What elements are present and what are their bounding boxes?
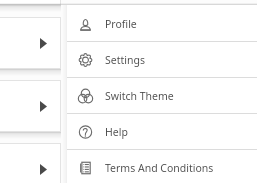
staticText: Help — [105, 125, 128, 139]
other: Open item — [40, 38, 47, 49]
staticText: Switch Theme — [105, 89, 174, 103]
other: Open item — [40, 164, 47, 175]
button[interactable]: Profile — [67, 6, 257, 41]
button[interactable]: Open item — [0, 80, 61, 132]
staticText: Terms And Conditions — [105, 161, 214, 175]
button[interactable]: Open item — [0, 143, 61, 183]
button[interactable]: Open item — [0, 17, 61, 69]
button[interactable]: Help — [67, 114, 257, 149]
button[interactable]: Terms And Conditions — [67, 150, 257, 183]
other: Open item — [40, 101, 47, 112]
button[interactable]: Open item — [0, 0, 61, 5]
staticText: Profile — [105, 17, 137, 31]
button[interactable]: Switch Theme — [67, 78, 257, 113]
staticText: Settings — [105, 53, 145, 67]
button[interactable]: Settings — [67, 42, 257, 77]
